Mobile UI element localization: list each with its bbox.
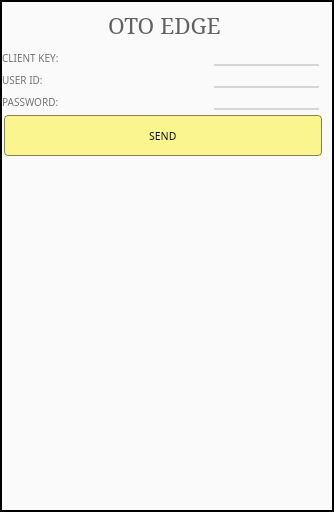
button[interactable]: SEND [4,115,322,156]
button[interactable]: USER ID [214,66,319,88]
staticText: USER ID: [2,73,43,87]
staticText: OTO EDGE [108,10,221,40]
staticText: PASSWORD: [2,95,59,109]
button[interactable]: CLIENT KEY [214,44,319,66]
button[interactable]: PASSWORD [214,88,319,110]
staticText: SEND [149,129,177,143]
staticText: CLIENT KEY: [2,51,59,65]
